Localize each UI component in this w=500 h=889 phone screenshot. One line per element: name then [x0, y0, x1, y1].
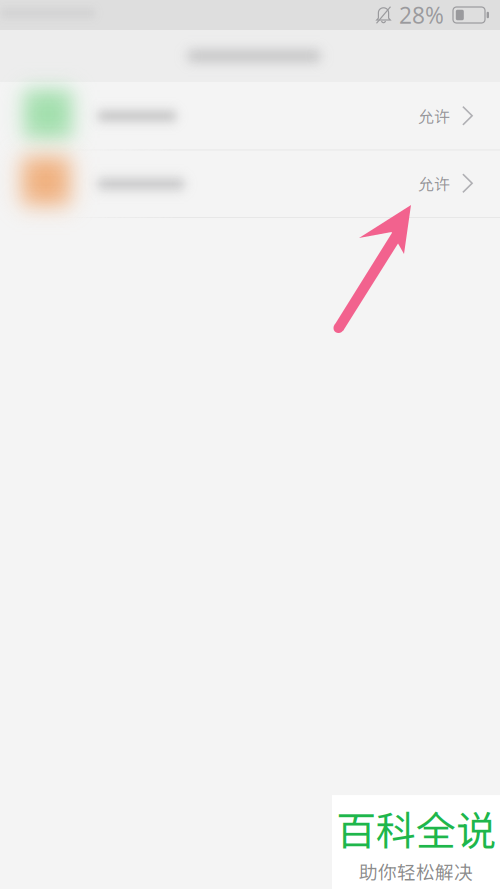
staticText: 28%	[399, 0, 444, 30]
button[interactable]: 允许	[0, 149, 500, 217]
staticText: 允许	[418, 104, 450, 127]
button[interactable]: 允许	[0, 82, 500, 149]
staticText: 助你轻松解决	[359, 858, 473, 885]
staticText: 百科全说	[336, 799, 496, 857]
staticText: 允许	[418, 172, 450, 195]
